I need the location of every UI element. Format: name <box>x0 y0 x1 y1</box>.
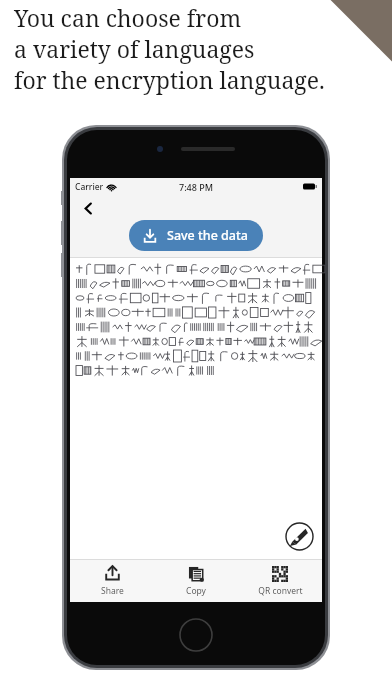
button[interactable]: Edit <box>285 522 314 551</box>
button[interactable]: Share <box>70 560 154 602</box>
staticText: Share <box>101 585 124 597</box>
button[interactable]: Save the data <box>129 220 263 251</box>
button[interactable]: Copy <box>154 560 238 602</box>
staticText: Save the data <box>167 227 248 244</box>
staticText: Carrier <box>75 181 104 193</box>
staticText: ComLock <box>329 7 387 64</box>
staticText: 7:48 PM <box>179 181 213 193</box>
button[interactable]: QR convert <box>238 560 322 602</box>
staticText: for the encryption language. <box>14 64 325 95</box>
staticText: You can choose from <box>14 2 242 33</box>
button[interactable]: Back <box>77 197 99 219</box>
staticText: Copy <box>186 585 206 597</box>
staticText: QR convert <box>258 585 303 597</box>
staticText: a variety of languages <box>14 33 255 64</box>
